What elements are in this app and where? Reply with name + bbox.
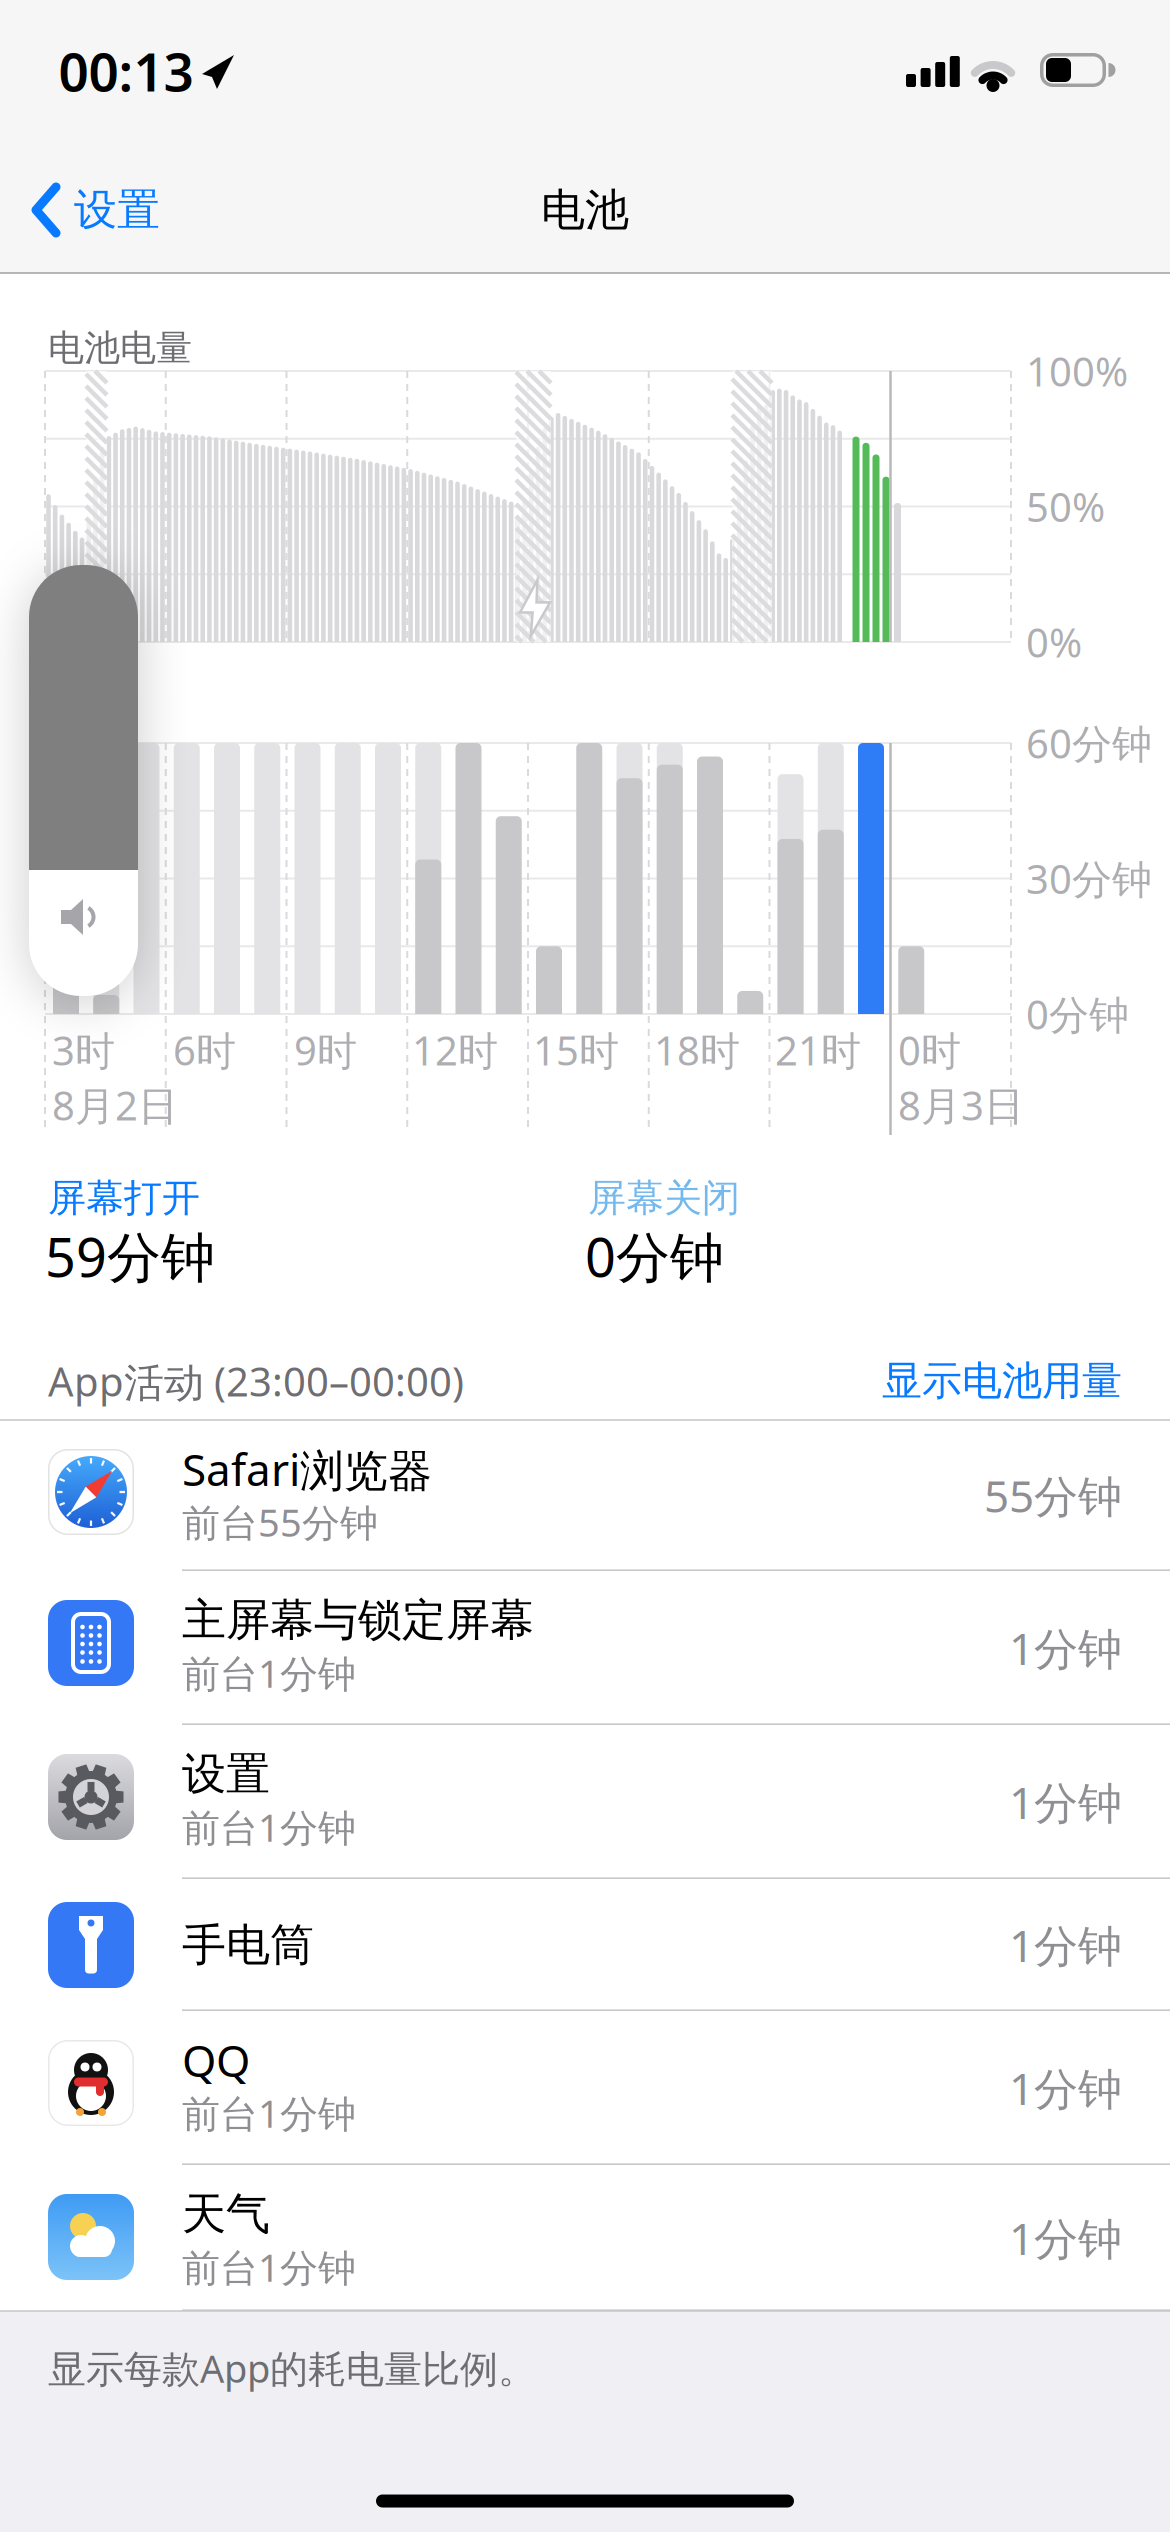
staticText: 59分钟 <box>45 1219 215 1293</box>
staticText: 0时 <box>898 1023 961 1077</box>
staticText: 设置 <box>182 1746 270 1802</box>
staticText: 前台1分钟 <box>182 2241 356 2293</box>
staticText: 15时 <box>533 1023 619 1077</box>
staticText: 电池 <box>541 182 629 238</box>
staticText: 6时 <box>173 1023 236 1077</box>
staticText: 18时 <box>654 1023 740 1077</box>
staticText: 屏幕打开 <box>48 1174 200 1222</box>
staticText: 前台1分钟 <box>182 1647 356 1699</box>
staticText: 设置 <box>74 183 160 237</box>
staticText: 0分钟 <box>1026 987 1129 1041</box>
button[interactable]: 设置 <box>0 1725 1170 1879</box>
staticText: 3时 <box>52 1023 115 1077</box>
staticText: 主屏幕与锁定屏幕 <box>182 1592 534 1648</box>
staticText: 0% <box>1026 615 1082 669</box>
staticText: 手电筒 <box>182 1917 314 1973</box>
staticText: 显示电池用量 <box>882 1356 1122 1406</box>
staticText: Safari浏览器 <box>182 1439 432 1499</box>
staticText: 1分钟 <box>1009 2058 1122 2118</box>
button[interactable]: 显示电池用量 <box>782 1346 1122 1416</box>
staticText: 电池电量 <box>48 325 192 371</box>
staticText: 前台1分钟 <box>182 1801 356 1853</box>
staticText: 60分钟 <box>1026 716 1152 770</box>
button[interactable]: 主屏幕与锁定屏幕 <box>0 1571 1170 1725</box>
staticText: 1分钟 <box>1009 2208 1122 2268</box>
staticText: 显示每款App的耗电量比例。 <box>48 2342 536 2394</box>
staticText: 1分钟 <box>1009 1772 1122 1832</box>
staticText: 55分钟 <box>984 1465 1122 1525</box>
button[interactable]: 手电筒 <box>0 1879 1170 2011</box>
staticText: 前台1分钟 <box>182 2087 356 2139</box>
staticText: 8月3日 <box>898 1078 1024 1132</box>
staticText: App活动 (23:00–00:00) <box>48 1354 464 1408</box>
staticText: 00:13 <box>58 35 193 107</box>
staticText: 0分钟 <box>585 1219 724 1293</box>
staticText: 前台55分钟 <box>182 1496 378 1548</box>
staticText: 12时 <box>412 1023 498 1077</box>
button[interactable]: 天气 <box>0 2165 1170 2311</box>
staticText: QQ <box>182 2030 250 2090</box>
staticText: 天气 <box>182 2186 270 2242</box>
staticText: 50% <box>1026 479 1105 534</box>
staticText: 30分钟 <box>1026 851 1152 906</box>
staticText: 8月2日 <box>52 1078 178 1132</box>
staticText: 9时 <box>294 1023 357 1077</box>
staticText: 100% <box>1026 344 1128 398</box>
staticText: 1分钟 <box>1009 1618 1122 1678</box>
button[interactable]: Safari浏览器 <box>0 1420 1170 1571</box>
staticText: 21时 <box>775 1023 861 1077</box>
button[interactable]: 返回设置 <box>0 166 250 254</box>
button[interactable]: QQ <box>0 2011 1170 2165</box>
staticText: 屏幕关闭 <box>588 1174 740 1222</box>
staticText: 1分钟 <box>1009 1915 1122 1975</box>
